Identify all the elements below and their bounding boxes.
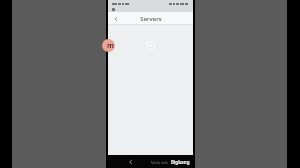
staticText: Made with — [151, 160, 169, 165]
button[interactable]: Messenger chat head — [102, 39, 115, 52]
staticText: Servers — [140, 15, 162, 23]
staticText: m — [107, 41, 114, 51]
button[interactable]: Back — [126, 157, 135, 166]
staticText: Bigbang — [171, 159, 190, 165]
button[interactable]: Back — [111, 14, 121, 24]
